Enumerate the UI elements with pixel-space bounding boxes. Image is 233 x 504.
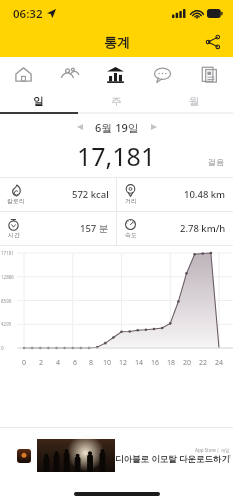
staticText: 24: [215, 358, 224, 368]
button[interactable]: Home: [0, 57, 46, 91]
staticText: 20: [183, 358, 192, 368]
staticText: 0: [1, 345, 4, 351]
staticText: 22: [199, 358, 208, 368]
staticText: 월: [189, 95, 200, 108]
button[interactable]: Statistics: [92, 57, 139, 91]
staticText: 6: [73, 358, 78, 368]
staticText: 12: [119, 358, 128, 368]
staticText: 속도: [125, 231, 137, 239]
staticText: 칼로리: [7, 197, 25, 205]
button[interactable]: 속도: [117, 212, 233, 245]
button[interactable]: 거리: [117, 178, 233, 211]
staticText: App Store | 게임: [195, 447, 230, 453]
staticText: 8590: [1, 298, 12, 304]
staticText: 디아블로 이모탈 다운로드하기: [115, 453, 230, 465]
staticText: 572 kcal: [72, 188, 109, 201]
staticText: 8: [89, 358, 94, 368]
staticText: 거리: [125, 197, 137, 205]
staticText: 10: [103, 358, 112, 368]
staticText: 4295: [1, 321, 12, 327]
button[interactable]: 주: [77, 91, 155, 112]
staticText: 16: [151, 358, 160, 368]
button[interactable]: News: [186, 57, 233, 91]
staticText: 통계: [104, 34, 130, 50]
staticText: 157 분: [80, 222, 109, 235]
staticText: 06:32: [13, 6, 43, 22]
staticText: 4: [56, 358, 61, 368]
button[interactable]: 칼로리: [0, 178, 116, 211]
staticText: 2: [39, 358, 44, 368]
staticText: 2.78 km/h: [180, 222, 226, 235]
button[interactable]: 일: [0, 91, 77, 112]
staticText: 걸음: [208, 157, 224, 167]
staticText: 12886: [1, 274, 14, 280]
staticText: 0: [22, 358, 27, 368]
button[interactable]: 시간: [0, 212, 116, 245]
staticText: 17181: [1, 250, 14, 256]
staticText: 시간: [8, 231, 20, 239]
button[interactable]: Advertisement: [0, 427, 233, 484]
staticText: 일: [33, 95, 44, 108]
button[interactable]: Share: [201, 30, 225, 54]
staticText: 14: [135, 358, 144, 368]
button[interactable]: Friends: [46, 57, 92, 91]
staticText: 17,181: [77, 139, 156, 172]
button[interactable]: Chat: [139, 57, 186, 91]
button[interactable]: 월: [155, 91, 233, 112]
staticText: 주: [111, 95, 122, 108]
button[interactable]: Previous day: [72, 119, 88, 135]
staticText: 18: [167, 358, 176, 368]
button[interactable]: Next day: [146, 119, 162, 135]
staticText: 6월 19일: [95, 120, 139, 135]
staticText: 10.48 km: [184, 188, 226, 201]
